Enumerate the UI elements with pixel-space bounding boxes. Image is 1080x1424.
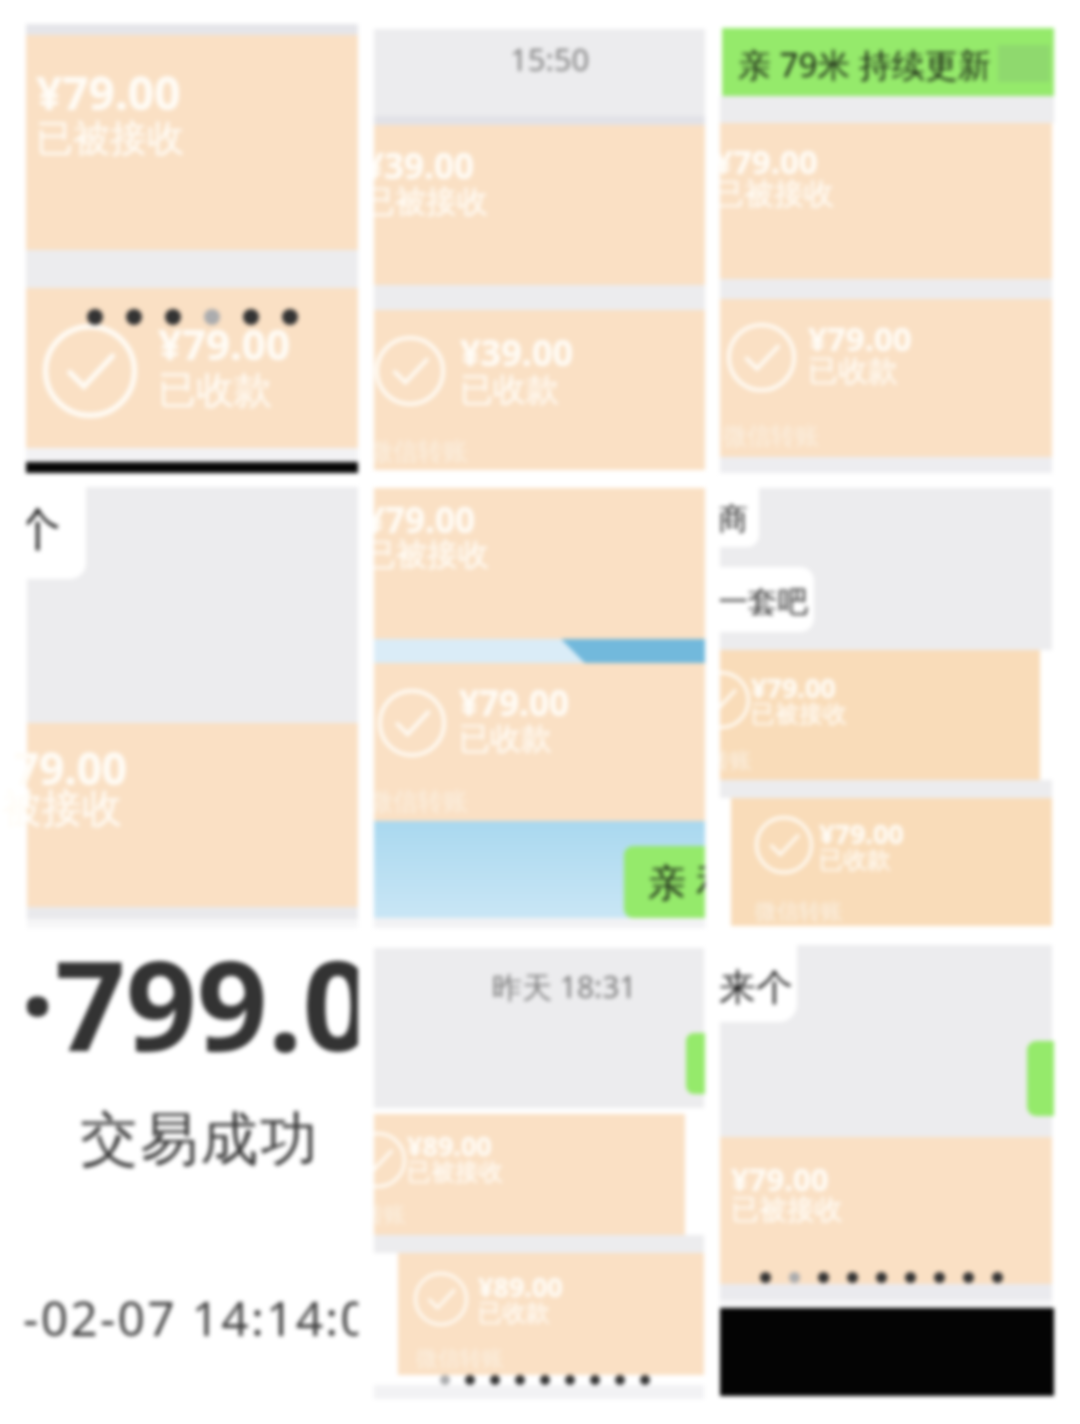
button[interactable]: Screenshot 7, payment of ¥799.00 succeed… <box>0 940 358 1424</box>
staticText: ¥79.00 <box>158 315 290 372</box>
staticText: 亲 79米 持续更新 <box>738 42 991 87</box>
staticText: 商 <box>720 500 748 538</box>
staticText: 已被接收 <box>374 182 488 221</box>
staticText: 交易成功 <box>79 1103 319 1176</box>
staticText: 微信转账 <box>755 898 843 926</box>
staticText: 已被接收 <box>407 1157 503 1187</box>
staticText: 个 <box>27 501 61 559</box>
staticText: 已收款 <box>478 1298 550 1328</box>
button[interactable]: Screenshot 3, chat with ¥79.00 transfer <box>720 0 1080 473</box>
staticText: ¥79.00 <box>720 139 818 184</box>
staticText: ¥79.00 <box>36 61 181 124</box>
staticText: ¥79.00 <box>808 316 912 361</box>
staticText: 亲 和 <box>648 855 705 907</box>
staticText: 已被接收 <box>731 1192 843 1227</box>
button[interactable]: Screenshot 5, ¥79.00 transfer received <box>374 483 705 928</box>
button[interactable]: Screenshot 1, WeChat transfer ¥79.00 rec… <box>0 0 358 473</box>
staticText: 转账 <box>374 1201 406 1229</box>
staticText: 转账 <box>720 747 752 775</box>
staticText: 微信转账 <box>723 421 819 451</box>
button[interactable]: Screenshot 6, chat with ¥79.00 transfer <box>720 483 1080 928</box>
staticText: 已收款 <box>459 719 552 758</box>
button[interactable]: Screenshot 2, WeChat transfer ¥39.00 rec… <box>374 0 705 473</box>
staticText: ¥79.00 <box>459 679 569 727</box>
staticText: 已收款 <box>158 366 272 414</box>
staticText: ¥89.00 <box>478 1268 563 1305</box>
staticText: 15:50 <box>510 38 590 80</box>
staticText: ¥39.00 <box>374 142 474 190</box>
staticText: ¥79.00 <box>819 815 904 852</box>
staticText: ·799.00 <box>20 940 358 1087</box>
staticText: 来个 <box>720 964 793 1011</box>
staticText: ¥89.00 <box>407 1127 492 1164</box>
staticText: -02-07 14:14:0 <box>23 1285 358 1350</box>
staticText: ¥79.00 <box>731 1158 829 1200</box>
staticText: 已被接收 <box>36 115 184 162</box>
staticText: 一套吧 <box>720 583 808 621</box>
staticText: 微信转账 <box>374 786 468 817</box>
staticText: ¥39.00 <box>460 328 574 377</box>
staticText: 已收款 <box>808 352 898 390</box>
staticText: 已被接收 <box>751 699 847 729</box>
staticText: 已收款 <box>460 369 559 411</box>
staticText: 已收款 <box>819 845 891 875</box>
staticText: 微信转账 <box>374 436 468 467</box>
staticText: 已被接收 <box>374 535 489 574</box>
button[interactable]: Screenshot 8, ¥89.00 transfer received <box>374 940 705 1424</box>
button[interactable]: Screenshot 9, ¥79.00 transfer received <box>720 940 1080 1424</box>
staticText: ¥79.00 <box>751 669 836 706</box>
staticText: 已被接收 <box>720 175 834 213</box>
staticText: 昨天 18:31 <box>492 966 637 1007</box>
staticText: 微信转账 <box>416 1345 504 1373</box>
staticText: 79.00 <box>14 738 128 798</box>
button[interactable]: Screenshot 4, chat with ¥79.00 transfer <box>0 483 358 928</box>
staticText: ¥79.00 <box>374 496 475 544</box>
staticText: 被接收 <box>2 783 122 833</box>
